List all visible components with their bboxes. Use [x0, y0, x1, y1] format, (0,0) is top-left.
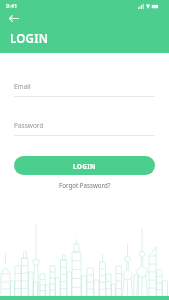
button[interactable]: LOGIN [14, 156, 155, 175]
staticText: Password [14, 121, 44, 130]
staticText: LOGIN [73, 162, 96, 171]
staticText: Email [14, 82, 31, 91]
staticText: 9:41 [6, 2, 18, 10]
button[interactable]: Password [0, 121, 169, 136]
button[interactable]: Back [4, 12, 23, 24]
staticText: LOGIN [10, 31, 49, 47]
button[interactable]: Forgot Password? [53, 179, 117, 191]
button[interactable]: Email [0, 82, 169, 97]
